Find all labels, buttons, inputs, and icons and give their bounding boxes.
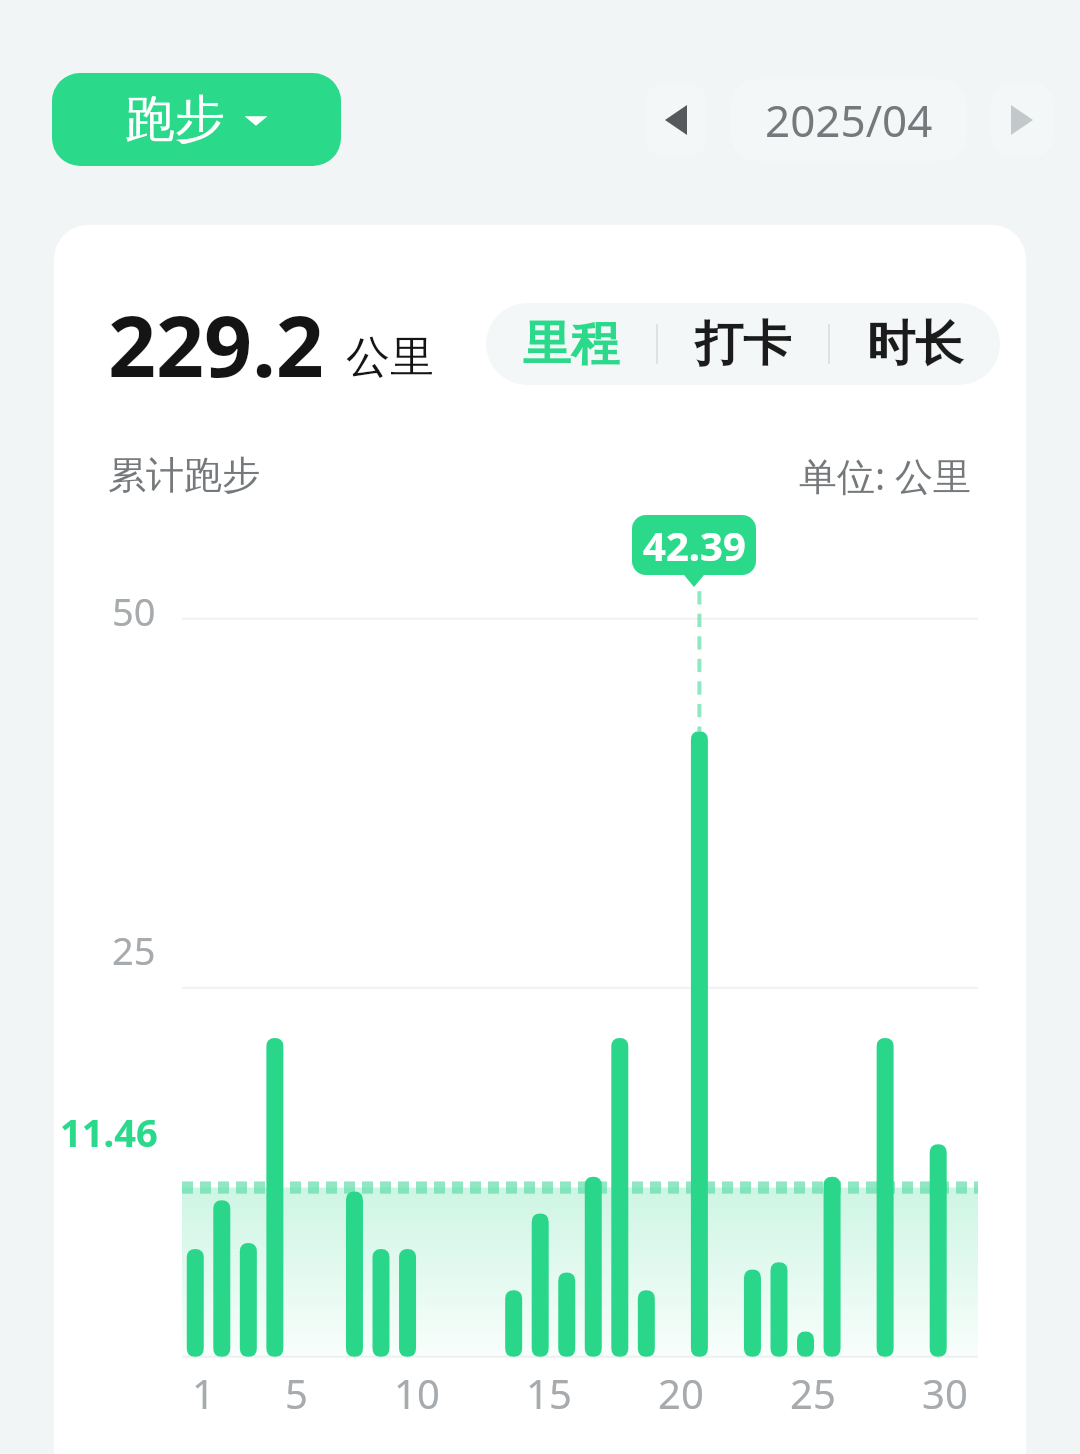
staticText: 打卡	[695, 314, 791, 374]
staticText: 5	[285, 1366, 308, 1420]
button[interactable]: 上一个月	[645, 83, 707, 157]
button[interactable]: 里程	[486, 303, 656, 385]
staticText: 20	[658, 1366, 704, 1420]
button[interactable]: 时长	[830, 303, 1000, 385]
staticText: 11.46	[60, 1106, 158, 1158]
staticText: 10	[394, 1366, 440, 1420]
button[interactable]: 2025/04	[731, 79, 967, 161]
staticText: 30	[922, 1366, 968, 1420]
staticText: 2025/04	[765, 90, 933, 150]
staticText: 50	[112, 585, 156, 637]
button[interactable]: 下一个月	[991, 83, 1053, 157]
staticText: 单位: 公里	[799, 449, 972, 501]
staticText: 1	[192, 1366, 215, 1420]
staticText: 15	[526, 1366, 572, 1420]
staticText: 公里	[346, 330, 434, 385]
staticText: 229.2	[108, 287, 324, 401]
staticText: 25	[112, 924, 156, 976]
staticText: 42.39	[643, 518, 746, 572]
button[interactable]: 打卡	[658, 303, 828, 385]
staticText: 里程	[523, 314, 619, 374]
staticText: 累计跑步	[108, 451, 260, 499]
button[interactable]: 跑步，选择运动类型	[52, 73, 341, 166]
staticText: 25	[790, 1366, 836, 1420]
staticText: 跑步	[125, 88, 225, 151]
staticText: 时长	[867, 314, 963, 374]
